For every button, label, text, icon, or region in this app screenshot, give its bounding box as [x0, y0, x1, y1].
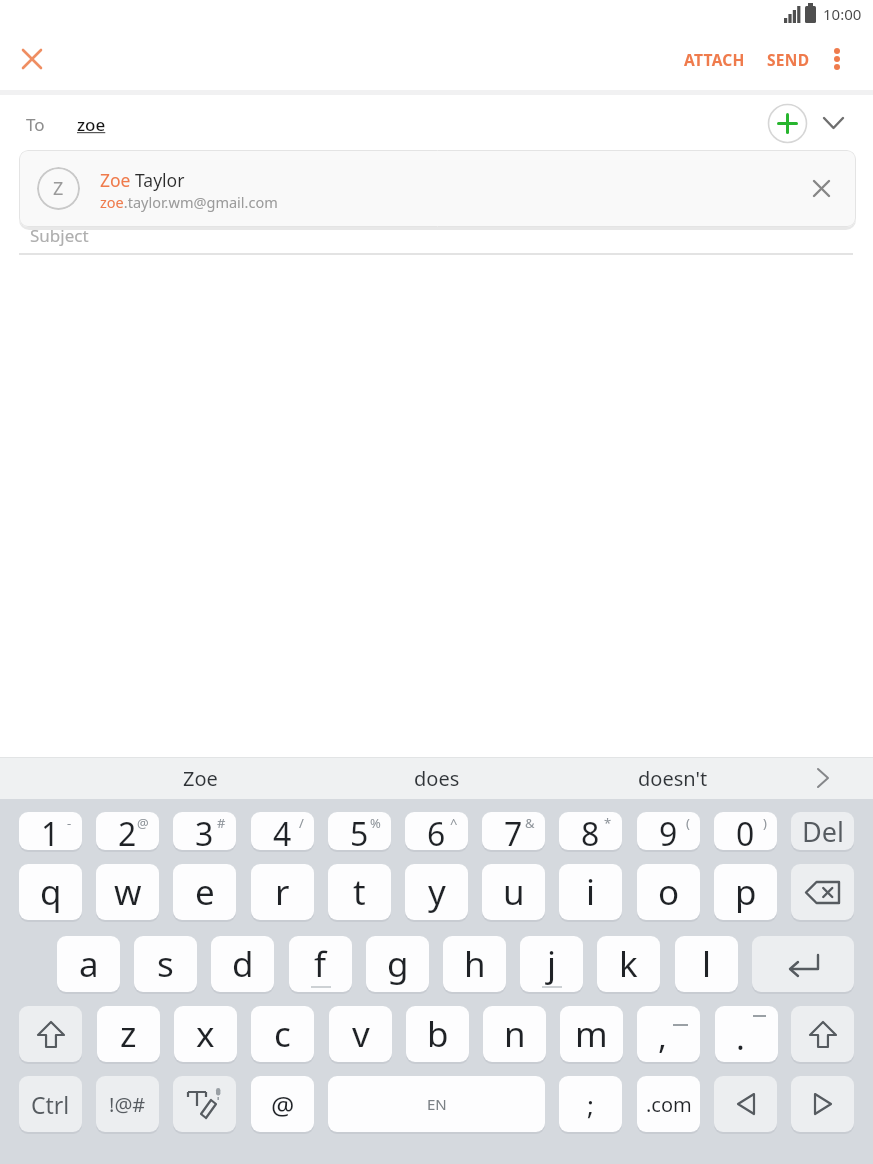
button[interactable]: 3	[173, 812, 236, 850]
staticText: Del	[802, 813, 844, 850]
button[interactable]	[752, 936, 854, 992]
button[interactable]	[791, 864, 854, 920]
button[interactable]: a	[57, 936, 120, 992]
button[interactable]: q	[19, 864, 82, 920]
button[interactable]: .	[715, 1006, 778, 1062]
button[interactable]	[10, 37, 54, 81]
staticText: q	[40, 868, 62, 916]
button[interactable]: g	[366, 936, 429, 992]
staticText: @	[137, 814, 149, 832]
button[interactable]: n	[483, 1006, 546, 1062]
button[interactable]: j	[520, 936, 583, 992]
staticText: 6	[427, 812, 446, 850]
button[interactable]: doesn't	[593, 757, 753, 799]
button[interactable]: SEND	[748, 36, 828, 82]
staticText: EN	[427, 1094, 447, 1114]
button[interactable]: c	[251, 1006, 314, 1062]
staticText: ATTACH	[684, 49, 745, 70]
staticText: s	[157, 940, 174, 988]
button[interactable]: Z	[19, 150, 856, 227]
button[interactable]: s	[134, 936, 197, 992]
staticText: m	[575, 1010, 608, 1058]
button[interactable]: p	[714, 864, 777, 920]
staticText: *	[604, 814, 612, 832]
staticText: Z	[53, 176, 64, 201]
staticText: 10:00	[823, 4, 862, 24]
staticText: To	[26, 113, 45, 136]
button[interactable]: 9	[637, 812, 700, 850]
button[interactable]: To	[26, 101, 66, 147]
button[interactable]: i	[559, 864, 622, 920]
button[interactable]: l	[675, 936, 738, 992]
button[interactable]: z	[97, 1006, 160, 1062]
staticText: SEND	[767, 49, 810, 70]
button[interactable]: y	[405, 864, 468, 920]
button[interactable]: d	[211, 936, 274, 992]
staticText: r	[275, 868, 290, 916]
staticText: does	[414, 765, 460, 792]
staticText: Zoe Taylor	[100, 168, 185, 192]
button[interactable]: Zoe	[130, 757, 270, 799]
staticText: y	[428, 868, 446, 916]
button[interactable]: 2	[96, 812, 159, 850]
staticText: e	[195, 868, 215, 916]
staticText: a	[79, 940, 99, 988]
staticText: i	[586, 868, 596, 916]
button[interactable]: o	[637, 864, 700, 920]
button[interactable]: @	[251, 1076, 314, 1132]
button[interactable]	[173, 1076, 236, 1132]
button[interactable]: r	[251, 864, 314, 920]
button[interactable]: Ctrl	[19, 1076, 82, 1132]
button[interactable]: !@#	[96, 1076, 159, 1132]
staticText: o	[658, 868, 680, 916]
staticText: p	[735, 868, 757, 916]
staticText: ;	[587, 1087, 594, 1122]
staticText: .com	[646, 1091, 692, 1118]
button[interactable]: m	[560, 1006, 623, 1062]
button[interactable]	[714, 1076, 777, 1132]
button[interactable]: 1	[19, 812, 82, 850]
button[interactable]: v	[329, 1006, 392, 1062]
button[interactable]: w	[96, 864, 159, 920]
button[interactable]: ATTACH	[670, 36, 758, 82]
button[interactable]: t	[328, 864, 391, 920]
button[interactable]	[791, 1076, 854, 1132]
button[interactable]: 6	[405, 812, 468, 850]
staticText: v	[352, 1010, 370, 1058]
button[interactable]: .com	[637, 1076, 700, 1132]
button[interactable]: k	[597, 936, 660, 992]
button[interactable]: h	[443, 936, 506, 992]
button[interactable]	[816, 106, 850, 140]
button[interactable]	[800, 167, 842, 209]
button[interactable]: does	[367, 757, 507, 799]
button[interactable]: 5	[328, 812, 391, 850]
button[interactable]: x	[174, 1006, 237, 1062]
staticText: d	[232, 940, 254, 988]
staticText: (	[686, 814, 690, 832]
button[interactable]: 0	[714, 812, 777, 850]
staticText: zoe	[77, 113, 106, 136]
button[interactable]: 8	[559, 812, 622, 850]
staticText: z	[120, 1010, 137, 1058]
button[interactable]: 4	[251, 812, 314, 850]
button[interactable]: 7	[482, 812, 545, 850]
button[interactable]: e	[173, 864, 236, 920]
staticText: g	[387, 940, 409, 988]
button[interactable]: ;	[559, 1076, 622, 1132]
button[interactable]: Del	[791, 812, 854, 850]
button[interactable]: f	[289, 936, 352, 992]
staticText: c	[274, 1010, 291, 1058]
button[interactable]	[791, 1006, 854, 1062]
button[interactable]	[826, 36, 848, 82]
staticText: /	[299, 814, 304, 832]
staticText: @	[271, 1087, 295, 1122]
staticText: )	[763, 814, 767, 832]
button[interactable]	[800, 757, 846, 799]
button[interactable]: u	[482, 864, 545, 920]
button[interactable]: ,	[637, 1006, 700, 1062]
button[interactable]: b	[406, 1006, 469, 1062]
button[interactable]	[19, 1006, 82, 1062]
button[interactable]	[766, 102, 808, 144]
staticText: ^	[450, 814, 458, 832]
button[interactable]: EN	[328, 1076, 545, 1132]
